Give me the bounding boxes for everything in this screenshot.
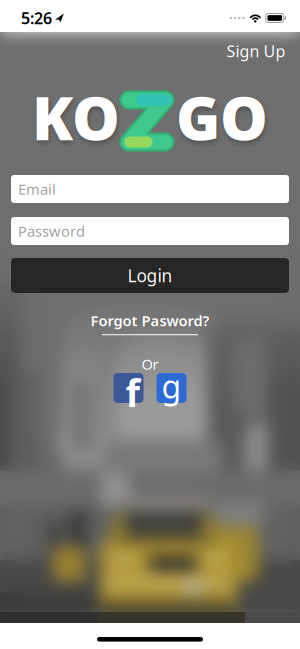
button[interactable]: Password: [11, 217, 289, 245]
staticText: Password: [18, 221, 85, 241]
staticText: Email: [18, 179, 56, 199]
staticText: Or: [141, 354, 158, 374]
staticText: Login: [127, 264, 172, 287]
staticText: g: [161, 365, 181, 407]
button[interactable]: Sign in with Google: [156, 373, 186, 403]
staticText: 5:26: [21, 7, 52, 29]
button[interactable]: Forgot Pasword?: [90, 311, 209, 335]
button[interactable]: Login: [11, 258, 289, 293]
staticText: Forgot Pasword?: [90, 311, 209, 330]
button[interactable]: Sign Up: [226, 40, 285, 62]
staticText: Sign Up: [226, 40, 285, 62]
staticText: GO: [176, 77, 268, 157]
button[interactable]: Sign in with Facebook: [113, 373, 143, 403]
button[interactable]: Email: [11, 175, 289, 203]
staticText: KO: [32, 77, 120, 157]
staticText: f: [125, 368, 139, 417]
